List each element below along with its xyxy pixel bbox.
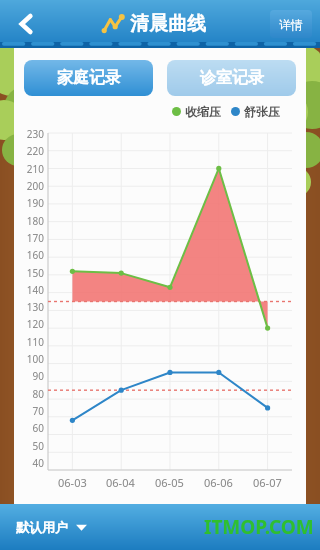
staticText: 60 [32, 421, 44, 435]
staticText: 180 [26, 214, 44, 228]
staticText: 210 [26, 162, 44, 176]
staticText: 06-07 [253, 475, 282, 490]
staticText: 160 [26, 248, 44, 262]
button[interactable]: 默认用户 [16, 519, 87, 535]
staticText: 70 [32, 404, 44, 418]
staticText: 50 [32, 439, 44, 453]
staticText: ITMOP.COM [204, 514, 314, 540]
staticText: 清晨曲线 [130, 12, 206, 36]
staticText: 140 [26, 283, 44, 297]
staticText: 90 [32, 369, 44, 383]
button[interactable]: 诊室记录 [167, 60, 296, 96]
staticText: 默认用户 [16, 519, 68, 535]
staticText: 150 [26, 266, 44, 280]
staticText: 110 [26, 335, 44, 349]
staticText: 170 [26, 231, 44, 245]
staticText: 收缩压 [185, 104, 221, 119]
staticText: 120 [26, 317, 44, 331]
staticText: 190 [26, 196, 44, 210]
staticText: 80 [32, 387, 44, 401]
staticText: 06-05 [155, 475, 184, 490]
staticText: 220 [26, 144, 44, 158]
staticText: 06-06 [204, 475, 233, 490]
button[interactable]: 详情 [270, 10, 312, 38]
staticText: 舒张压 [244, 104, 280, 119]
button[interactable]: 家庭记录 [24, 60, 153, 96]
staticText: 230 [26, 127, 44, 141]
staticText: 200 [26, 179, 44, 193]
staticText: 130 [26, 300, 44, 314]
staticText: 详情 [279, 17, 303, 32]
staticText: 06-04 [106, 475, 135, 490]
staticText: 100 [26, 352, 44, 366]
staticText: 06-03 [58, 475, 87, 490]
button[interactable]: Back [6, 4, 46, 44]
staticText: 家庭记录 [57, 68, 121, 88]
staticText: 40 [32, 456, 44, 470]
staticText: 诊室记录 [200, 68, 264, 88]
